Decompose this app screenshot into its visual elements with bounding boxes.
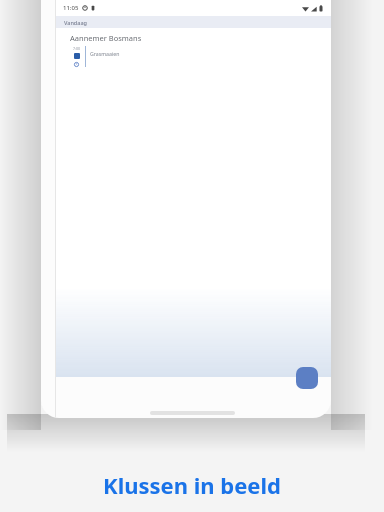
staticText: Grasmaaien: [90, 50, 120, 57]
staticText: 11:05: [63, 4, 79, 12]
button[interactable]: Vandaag: [56, 16, 331, 28]
button[interactable]: 7:00: [70, 46, 331, 67]
staticText: Vandaag: [64, 19, 87, 26]
staticText: Aannemer Bosmans: [70, 33, 142, 43]
button[interactable]: Nieuwe klus toevoegen: [296, 367, 318, 389]
staticText: 7:00: [73, 46, 81, 51]
staticText: Klussen in beeld: [0, 470, 384, 500]
